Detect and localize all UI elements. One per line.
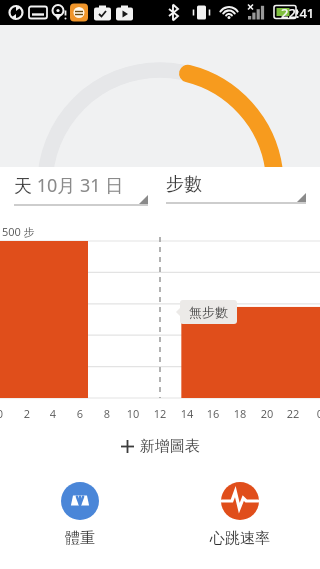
staticText: 心跳速率: [210, 529, 270, 548]
button[interactable]: 心跳速率: [160, 478, 320, 552]
staticText: 18: [233, 406, 247, 421]
staticText: 22: [286, 406, 300, 421]
staticText: 4: [46, 406, 60, 421]
staticText: 6: [73, 406, 87, 421]
staticText: 8: [100, 406, 114, 421]
staticText: 2: [20, 406, 34, 421]
staticText: 20: [260, 406, 274, 421]
staticText: 10月 31 日: [32, 173, 124, 198]
staticText: 步數: [166, 173, 202, 196]
staticText: 0: [0, 406, 7, 421]
staticText: 天: [14, 175, 32, 198]
button[interactable]: 天: [14, 173, 148, 213]
button[interactable]: 體重: [0, 478, 160, 552]
staticText: 體重: [65, 529, 95, 548]
staticText: 16: [206, 406, 220, 421]
staticText: 22:41: [281, 4, 315, 22]
staticText: 10: [126, 406, 140, 421]
staticText: 新增圖表: [140, 437, 200, 456]
staticText: 12: [153, 406, 167, 421]
button[interactable]: 步數: [166, 173, 306, 211]
staticText: 0: [313, 406, 320, 421]
staticText: 500 步: [2, 224, 35, 239]
staticText: 無步數: [189, 304, 228, 320]
button[interactable]: 新增圖表: [0, 431, 320, 462]
staticText: 14: [180, 406, 194, 421]
